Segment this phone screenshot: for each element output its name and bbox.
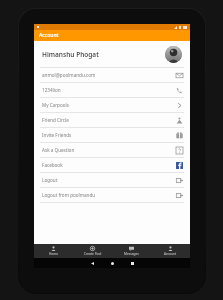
button[interactable]: Create Pool [73,244,112,258]
other: Friend circle [176,117,183,124]
button[interactable]: Invite Friends [34,128,190,142]
staticText: Invite Friends [42,132,175,138]
staticText: Create Pool [84,252,102,256]
staticText: Logout from poolmandu [42,192,175,198]
staticText: Ask a Question [42,147,175,153]
button[interactable]: Logout from poolmandu [34,188,190,202]
button[interactable]: Messages [112,244,151,258]
other: Ask a question [176,147,183,154]
staticText: Account [164,252,177,256]
button[interactable]: anmol@poolmandu.com [34,68,190,82]
button[interactable]: Himanshu Phogat [34,41,190,67]
other: Phone [176,87,183,94]
button[interactable]: Home [34,244,73,258]
button[interactable]: Profile photo [165,46,182,63]
staticText: Account [39,32,59,39]
button[interactable]: 1234lion [34,83,190,97]
staticText: Logout [42,177,175,183]
button[interactable]: Ask a Question [34,143,190,157]
other: Open [176,102,183,109]
staticText: anmol@poolmandu.com [42,72,175,78]
staticText: Friend Circle [42,117,175,123]
staticText: Facebook [42,162,175,168]
button[interactable]: Logout [34,173,190,187]
button[interactable]: Home [107,258,117,268]
button[interactable]: My Carpools [34,98,190,112]
button[interactable]: Account [151,244,190,258]
button[interactable]: Friend Circle [34,113,190,127]
button[interactable]: Recent apps [127,258,137,268]
button[interactable]: Facebook [34,158,190,172]
other: Logout [176,177,183,184]
staticText: Himanshu Phogat [42,50,165,59]
other: Email [176,72,183,79]
staticText: 1234lion [42,87,175,93]
button[interactable]: Back [87,258,97,268]
staticText: Home [49,252,59,256]
other: Facebook [176,162,183,169]
other: Invite friends [176,132,183,139]
staticText: Messages [124,252,139,256]
staticText: My Carpools [42,102,175,108]
other: Logout [176,192,183,199]
